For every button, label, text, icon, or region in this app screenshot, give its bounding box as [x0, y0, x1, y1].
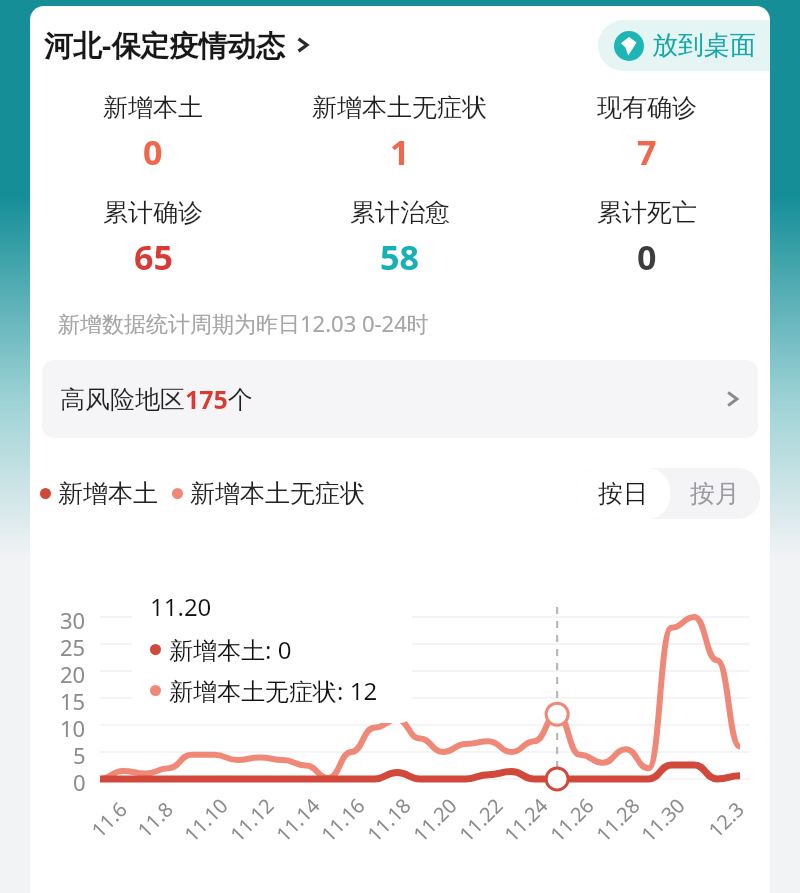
- staticText: 放到桌面: [652, 29, 756, 62]
- staticText: 11.16: [315, 792, 371, 847]
- staticText: 7: [637, 129, 657, 175]
- staticText: 新增本土: [103, 92, 203, 123]
- button[interactable]: 按日: [576, 468, 670, 519]
- button[interactable]: 按月: [670, 468, 760, 519]
- staticText: 11.28: [590, 792, 646, 847]
- staticText: 累计死亡: [597, 197, 697, 228]
- staticText: 11.22: [453, 792, 509, 847]
- staticText: 11.26: [544, 792, 600, 847]
- staticText: 11.20: [150, 590, 212, 623]
- staticText: 30: [60, 605, 86, 632]
- staticText: 按月: [690, 478, 740, 509]
- button[interactable]: 高风险地区: [42, 360, 758, 438]
- staticText: 新增本土: 0: [169, 633, 292, 666]
- staticText: 11.24: [498, 792, 554, 847]
- staticText: 20: [60, 659, 86, 686]
- staticText: 11.12: [224, 792, 280, 847]
- staticText: 高风险地区: [60, 384, 185, 415]
- staticText: 0: [143, 129, 163, 175]
- staticText: 新增数据统计周期为昨日12.03 0-24时: [58, 308, 429, 338]
- staticText: 新增本土: [58, 478, 158, 509]
- staticText: 175: [185, 382, 228, 416]
- staticText: 新增本土无症状: 12: [169, 674, 378, 707]
- staticText: 11.14: [270, 792, 326, 847]
- staticText: 累计治愈: [350, 197, 450, 228]
- staticText: 58: [380, 234, 419, 280]
- staticText: 11.18: [361, 792, 417, 847]
- staticText: 现有确诊: [597, 92, 697, 123]
- staticText: 新增本土无症状: [190, 478, 365, 509]
- staticText: 65: [134, 234, 173, 280]
- staticText: 11.6: [85, 796, 133, 843]
- staticText: 10: [60, 713, 86, 740]
- staticText: 河北-保定疫情动态: [44, 25, 286, 65]
- staticText: 11.8: [131, 796, 179, 843]
- staticText: 累计确诊: [103, 197, 203, 228]
- staticText: 5: [73, 740, 86, 767]
- staticText: 25: [60, 632, 86, 659]
- staticText: 个: [228, 384, 253, 415]
- staticText: 11.10: [178, 792, 234, 847]
- staticText: 1: [390, 129, 410, 175]
- staticText: 0: [637, 234, 657, 280]
- button[interactable]: 放到桌面: [598, 20, 770, 71]
- staticText: 11.30: [635, 792, 691, 847]
- staticText: 15: [60, 686, 86, 713]
- button[interactable]: 河北-保定疫情动态: [44, 25, 312, 65]
- staticText: 0: [73, 767, 86, 794]
- staticText: 按日: [598, 478, 648, 509]
- other: 放到桌面: [614, 31, 644, 61]
- staticText: 12.3: [702, 796, 750, 843]
- staticText: 新增本土无症状: [312, 92, 487, 123]
- staticText: 11.20: [407, 792, 463, 847]
